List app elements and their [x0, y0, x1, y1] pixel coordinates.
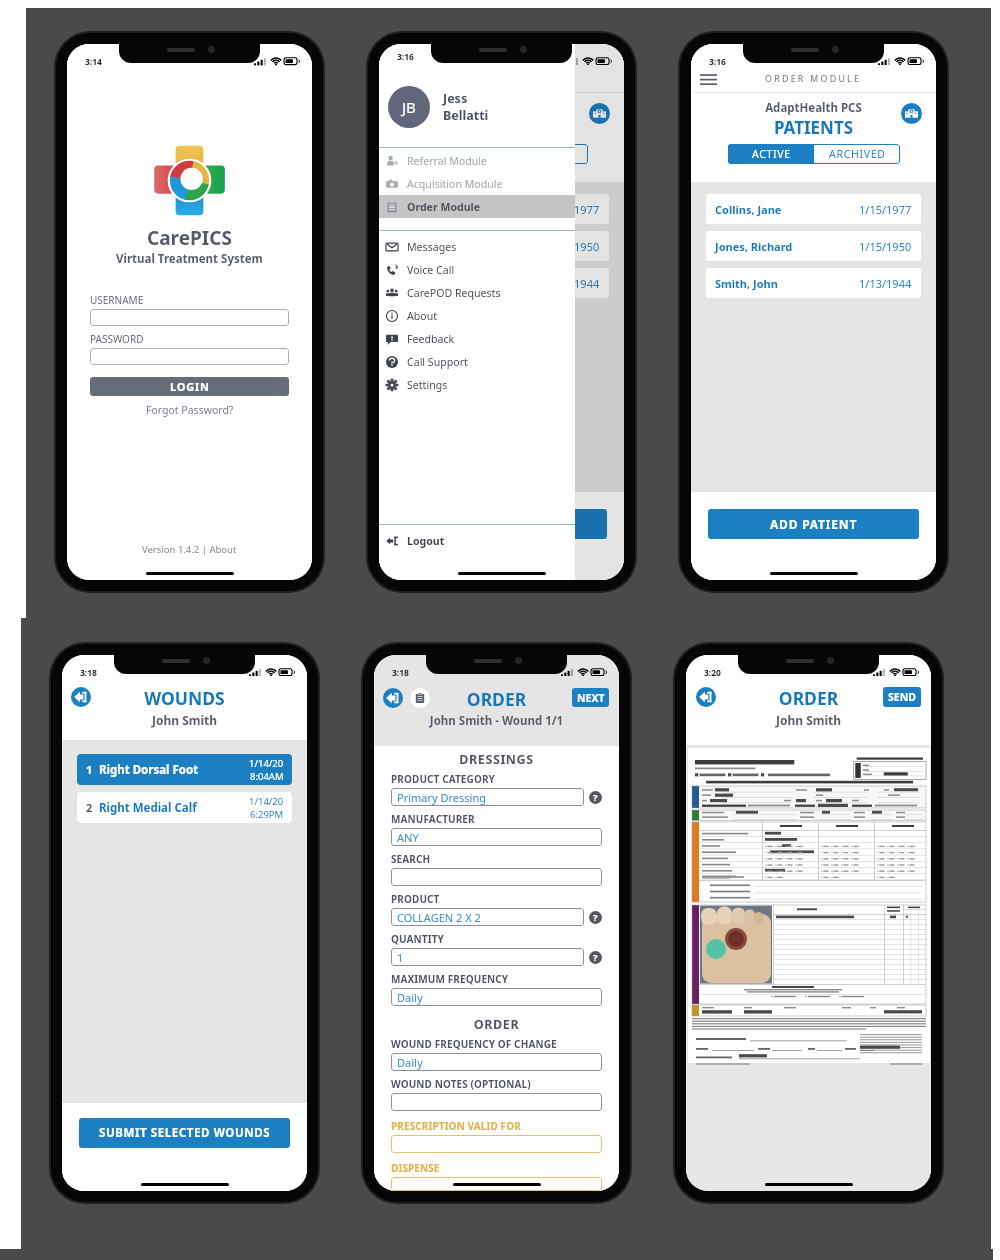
staticText: 1 [86, 762, 93, 777]
button[interactable] [397, 868, 602, 886]
button[interactable]: ARCHIVED [502, 144, 588, 164]
staticText: 6:29PM [250, 808, 284, 821]
staticText: About [407, 309, 438, 323]
staticText: ? [593, 911, 598, 924]
button[interactable]: Referral Module [379, 149, 575, 172]
button[interactable]: ACTIVE [416, 144, 502, 164]
button[interactable]: Smith, John [403, 268, 600, 298]
staticText: Jones, Richard [403, 239, 481, 254]
staticText: MANUFACTURER [391, 812, 475, 826]
staticText: Order Module [407, 200, 481, 214]
staticText: Voice Call [407, 263, 455, 277]
staticText: USERNAME [90, 293, 144, 307]
staticText: WOUNDS [62, 686, 307, 710]
button[interactable]: Primary Dressing [397, 788, 584, 806]
staticText: 2 [86, 800, 93, 815]
staticText: WOUND FREQUENCY OF CHANGE [391, 1037, 557, 1051]
button[interactable]: ARCHIVED [814, 144, 900, 164]
staticText: Collins, Jane [715, 202, 782, 217]
button[interactable]: LOGIN [90, 377, 289, 396]
button[interactable]: 1 [86, 754, 284, 785]
button[interactable]: Call Support [379, 350, 575, 373]
button[interactable] [397, 1177, 602, 1191]
staticText: 3:20 [704, 667, 721, 679]
button[interactable]: SUBMIT SELECTED WOUNDS [79, 1118, 290, 1148]
button[interactable]: 1 [397, 948, 584, 966]
staticText: ARCHIVED [829, 147, 886, 161]
button[interactable]: Forgot Password? [90, 402, 289, 418]
staticText: JB [402, 97, 416, 117]
button[interactable]: Jones, Richard [715, 231, 912, 261]
button[interactable]: ACTIVE [728, 144, 814, 164]
button[interactable] [90, 309, 289, 326]
button[interactable]: Logout [379, 529, 575, 552]
button[interactable] [90, 348, 289, 365]
staticText: ORDER [374, 687, 619, 711]
button[interactable]: Help [589, 791, 602, 804]
staticText: ORDER [686, 686, 931, 710]
staticText: ORDER MODULE [765, 73, 862, 85]
staticText: Right Dorsal Foot [99, 762, 199, 778]
staticText: PRODUCT CATEGORY [391, 772, 495, 786]
staticText: 3:14 [85, 56, 102, 68]
staticText: Call Support [407, 355, 468, 369]
staticText: Bellatti [443, 107, 489, 124]
button[interactable]: ADD PATIENT [396, 509, 607, 539]
button[interactable]: SEND [883, 687, 921, 707]
staticText: PRODUCT [391, 892, 440, 906]
button[interactable]: Back [696, 687, 716, 707]
staticText: CarePICS [147, 225, 232, 251]
staticText: Virtual Treatment System [116, 251, 263, 267]
button[interactable]: 2 [86, 792, 284, 823]
staticText: ACTIVE [440, 147, 479, 161]
button[interactable]: Order details [410, 688, 430, 708]
button[interactable]: Facility [901, 103, 922, 124]
staticText: Acquisition Module [407, 177, 503, 191]
button[interactable]: Collins, Jane [715, 194, 912, 224]
button[interactable] [397, 1135, 602, 1153]
button[interactable]: Order Module [379, 195, 575, 218]
button[interactable]: Open navigation menu [691, 65, 726, 93]
staticText: SUBMIT SELECTED WOUNDS [99, 1125, 271, 1141]
staticText: 1/14/20 [249, 795, 284, 808]
button[interactable]: Settings [379, 373, 575, 396]
button[interactable]: CarePOD Requests [379, 281, 575, 304]
staticText: 8:04AM [250, 770, 284, 783]
button[interactable]: Collins, Jane [403, 194, 600, 224]
button[interactable]: COLLAGEN 2 X 2 [397, 908, 584, 926]
button[interactable]: Smith, John [715, 268, 912, 298]
button[interactable] [397, 1093, 602, 1111]
button[interactable]: JB [379, 86, 575, 128]
staticText: Logout [407, 534, 445, 548]
staticText: ADD PATIENT [458, 516, 546, 532]
button[interactable]: Voice Call [379, 258, 575, 281]
staticText: COLLAGEN 2 X 2 [397, 910, 481, 925]
staticText: Daily [397, 990, 423, 1005]
staticText: Smith, John [715, 276, 778, 291]
button[interactable]: Feedback [379, 327, 575, 350]
button[interactable]: Facility [589, 103, 610, 124]
button[interactable]: Back [71, 687, 91, 707]
button[interactable]: Back [383, 688, 403, 708]
staticText: LOGIN [170, 379, 210, 394]
staticText: Right Medial Calf [99, 800, 197, 816]
staticText: CarePOD Requests [407, 286, 501, 300]
button[interactable]: Help [589, 911, 602, 924]
button[interactable]: Open navigation menu [379, 65, 414, 93]
staticText: 1/15/1977 [859, 202, 912, 217]
button[interactable]: Jones, Richard [403, 231, 600, 261]
button[interactable]: ANY [397, 828, 602, 846]
button[interactable]: Daily [397, 988, 602, 1006]
staticText: 1/15/1977 [547, 202, 600, 217]
button[interactable]: Daily [397, 1053, 602, 1071]
button[interactable]: Messages [379, 235, 575, 258]
staticText: ? [593, 951, 598, 964]
button[interactable]: ADD PATIENT [708, 509, 919, 539]
button[interactable]: Version 1.4.2 | About [67, 542, 312, 556]
button[interactable]: Acquisition Module [379, 172, 575, 195]
button[interactable]: Help [589, 951, 602, 964]
staticText: Settings [407, 378, 448, 392]
button[interactable]: NEXT [572, 688, 609, 707]
staticText: Primary Dressing [397, 790, 487, 805]
button[interactable]: About [379, 304, 575, 327]
